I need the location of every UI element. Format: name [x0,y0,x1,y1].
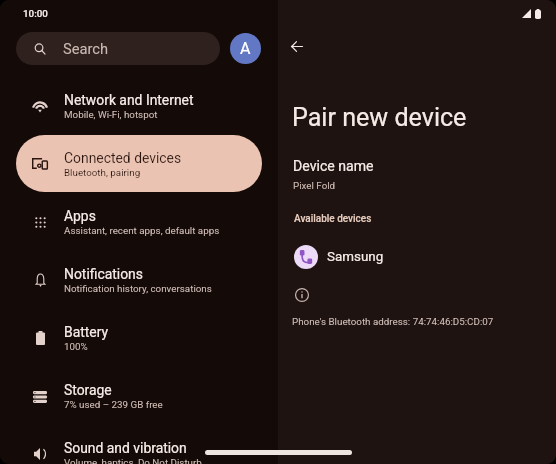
staticText: Device name [293,158,374,175]
button[interactable]: Notifications [16,251,262,308]
button[interactable]: Apps [16,193,262,250]
button[interactable]: Connected devices [16,135,262,192]
staticText: Network and Internet [64,92,194,108]
button[interactable]: Search [16,32,220,65]
staticText: Available devices [294,213,372,225]
staticText: 10:00 [23,8,48,19]
staticText: A [240,39,251,58]
staticText: Pixel Fold [293,180,336,191]
staticText: 7% used – 239 GB free [64,399,163,410]
staticText: Volume, haptics, Do Not Disturb [64,457,202,464]
button[interactable]: Battery [16,309,262,366]
staticText: Notifications [64,266,143,282]
button[interactable]: Storage [16,367,262,424]
button[interactable]: Network and Internet [16,77,262,134]
staticText: Battery [64,324,109,340]
staticText: Assistant, recent apps, default apps [64,225,220,236]
staticText: Bluetooth, pairing [64,167,141,178]
staticText: Connected devices [64,150,182,166]
staticText: Notification history, conversations [64,283,212,294]
staticText: Apps [64,208,96,224]
staticText: Search [63,40,109,57]
button[interactable]: Account [230,33,261,64]
staticText: Mobile, Wi-Fi, hotspot [64,109,158,120]
staticText: Pair new device [292,103,467,132]
staticText: Samsung [327,249,384,265]
staticText: Sound and vibration [64,440,187,456]
button[interactable]: Back [278,27,316,65]
staticText: 100% [64,341,88,352]
button[interactable]: Sound and vibration [16,425,262,464]
staticText: Phone's Bluetooth address: 74:74:46:D5:C… [292,316,494,327]
staticText: Storage [64,382,112,398]
button[interactable]: Samsung [278,240,556,273]
